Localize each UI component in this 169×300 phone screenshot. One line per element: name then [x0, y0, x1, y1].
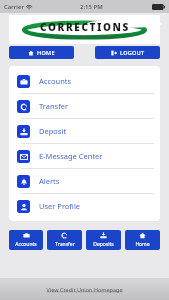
button[interactable]: Alerts [9, 169, 160, 193]
staticText: Accounts [39, 76, 72, 86]
button[interactable]: E-Message Center [9, 144, 160, 168]
staticText: HOME [37, 49, 55, 56]
staticText: Accounts [15, 241, 37, 248]
button[interactable]: Deposit [9, 119, 160, 143]
button[interactable]: Home [125, 230, 160, 250]
button[interactable]: User Profile [9, 194, 160, 218]
button[interactable]: Transfer [9, 94, 160, 118]
staticText: Home [135, 241, 150, 248]
staticText: E-Message Center [39, 151, 103, 161]
button[interactable]: LOGOUT [95, 46, 160, 59]
staticText: FEDERAL CREDIT UNION [58, 34, 112, 39]
button[interactable]: View Credit Union Homepage [46, 286, 123, 293]
staticText: Transfer [55, 241, 75, 248]
staticText: Deposit [39, 126, 67, 136]
staticText: Carrier [4, 3, 24, 11]
staticText: 2:15 PM [80, 3, 103, 11]
staticText: Deposits [93, 241, 114, 248]
button[interactable]: Accounts [9, 69, 160, 93]
staticText: Transfer [39, 101, 69, 111]
staticText: CORRECTIONS [40, 20, 130, 34]
button[interactable]: Accounts [9, 230, 43, 250]
button[interactable]: HOME [9, 46, 74, 59]
staticText: Alerts [39, 176, 60, 186]
staticText: LOGOUT [120, 49, 145, 56]
button[interactable]: Transfer [47, 230, 82, 250]
staticText: User Profile [39, 201, 81, 211]
button[interactable]: Deposits [86, 230, 121, 250]
